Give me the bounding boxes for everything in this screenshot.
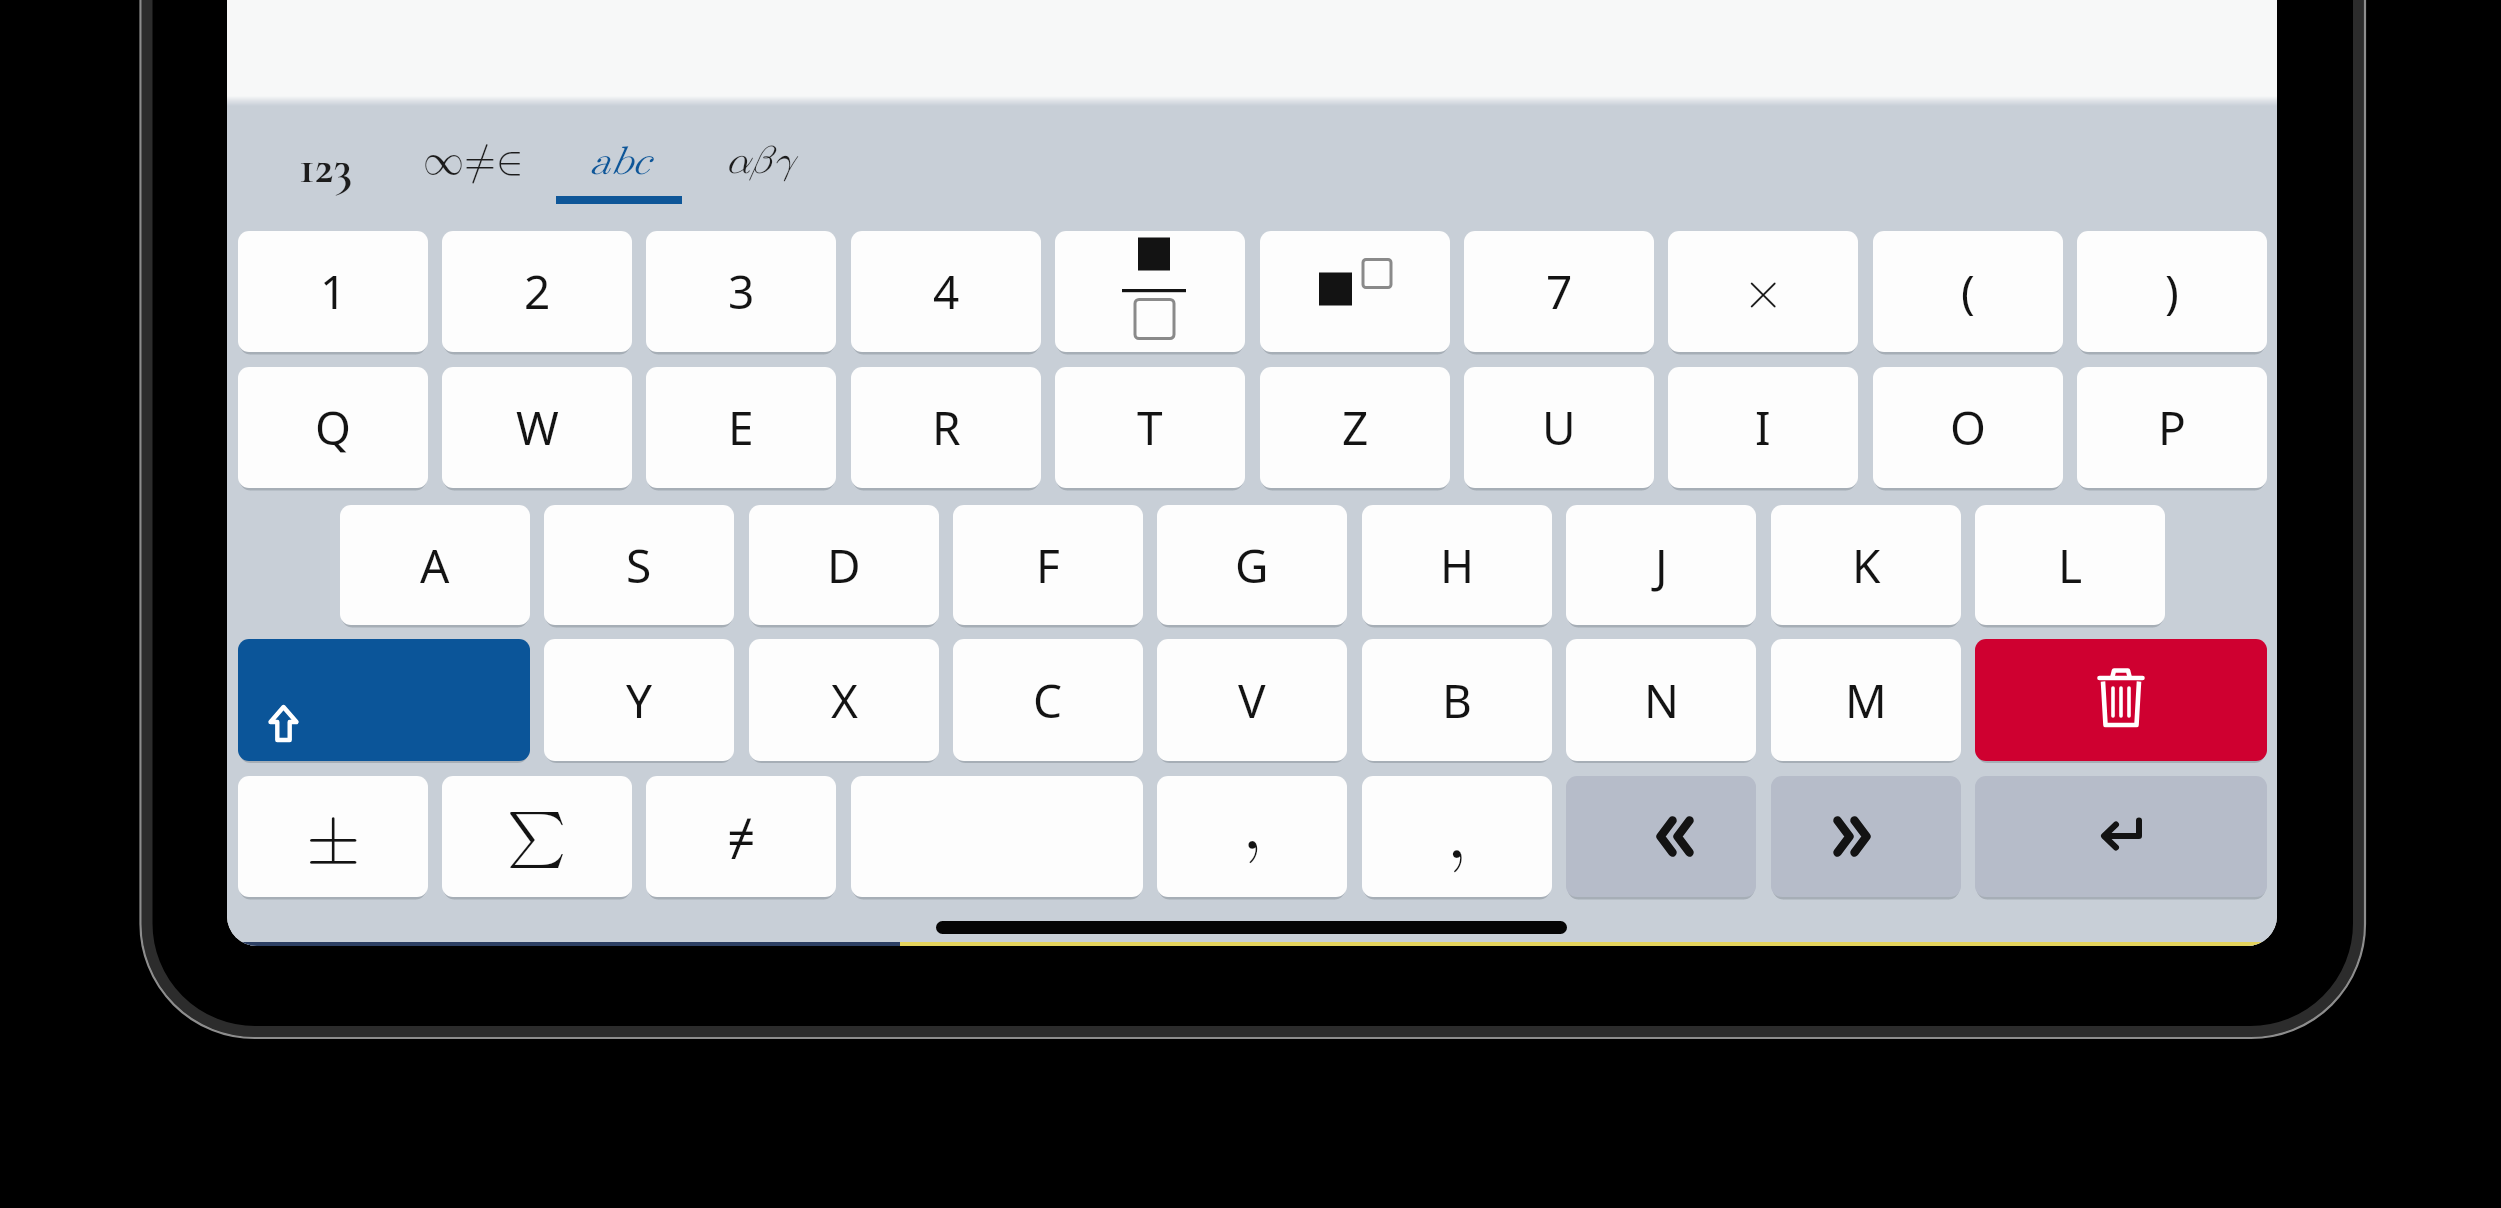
staticText: A bbox=[420, 534, 450, 597]
staticText: ‚ bbox=[1447, 798, 1468, 872]
staticText: R bbox=[932, 396, 961, 459]
staticText: O bbox=[1950, 396, 1986, 459]
button[interactable]: Fraction bbox=[1055, 231, 1245, 352]
button[interactable]: Y bbox=[544, 639, 734, 761]
staticText: 3 bbox=[728, 260, 755, 323]
staticText: M bbox=[1845, 669, 1887, 732]
button[interactable]: abc bbox=[549, 112, 689, 218]
staticText: T bbox=[1137, 396, 1163, 459]
staticText: 2 bbox=[524, 260, 551, 323]
staticText: H bbox=[1440, 534, 1475, 597]
button[interactable]: D bbox=[749, 505, 939, 625]
staticText: S bbox=[626, 534, 652, 597]
button[interactable]: αβγ bbox=[689, 112, 829, 218]
button[interactable]: Exponent bbox=[1260, 231, 1450, 352]
button[interactable]: Enter bbox=[1975, 776, 2267, 897]
button[interactable]: C bbox=[953, 639, 1143, 761]
staticText: D bbox=[827, 534, 861, 597]
button[interactable]: ∑ bbox=[442, 776, 632, 897]
staticText: Y bbox=[626, 669, 653, 732]
button[interactable]: G bbox=[1157, 505, 1347, 625]
button[interactable]: N bbox=[1566, 639, 1756, 761]
staticText: Z bbox=[1342, 396, 1369, 459]
button[interactable]: Shift bbox=[238, 639, 530, 761]
button[interactable]: V bbox=[1157, 639, 1347, 761]
button[interactable]: T bbox=[1055, 367, 1245, 488]
staticText: 4 bbox=[933, 260, 960, 323]
button[interactable]: Next bbox=[1771, 776, 1961, 897]
staticText: ) bbox=[2165, 260, 2179, 323]
staticText: 123 bbox=[299, 139, 353, 196]
button[interactable]: A bbox=[340, 505, 530, 625]
button[interactable]: 3 bbox=[646, 231, 836, 352]
button[interactable]: Previous bbox=[1566, 776, 1756, 897]
staticText: ∞≠∈ bbox=[423, 141, 524, 182]
staticText: ( bbox=[1961, 260, 1975, 323]
button[interactable]: ± bbox=[238, 776, 428, 897]
staticText: F bbox=[1036, 534, 1060, 597]
staticText: N bbox=[1644, 669, 1679, 732]
staticText: ≠ bbox=[727, 803, 756, 871]
staticText: B bbox=[1442, 669, 1472, 732]
button[interactable]: ≠ bbox=[646, 776, 836, 897]
staticText: K bbox=[1852, 534, 1881, 597]
button[interactable]: H bbox=[1362, 505, 1552, 625]
staticText: G bbox=[1235, 534, 1269, 597]
staticText: ’ bbox=[1242, 832, 1263, 897]
staticText: E bbox=[728, 396, 754, 459]
button[interactable]: 7 bbox=[1464, 231, 1654, 352]
button[interactable]: B bbox=[1362, 639, 1552, 761]
button[interactable]: L bbox=[1975, 505, 2165, 625]
button[interactable]: 1 bbox=[238, 231, 428, 352]
button[interactable]: S bbox=[544, 505, 734, 625]
staticText: J bbox=[1655, 534, 1668, 597]
button[interactable]: ’ bbox=[1157, 776, 1347, 897]
button[interactable]: Delete bbox=[1975, 639, 2267, 761]
staticText: U bbox=[1542, 396, 1576, 459]
staticText: P bbox=[2158, 396, 2186, 459]
staticText: 7 bbox=[1546, 260, 1573, 323]
staticText: abc bbox=[589, 142, 649, 182]
staticText: I bbox=[1755, 396, 1771, 459]
button[interactable]: U bbox=[1464, 367, 1654, 488]
staticText: X bbox=[831, 669, 858, 732]
button[interactable]: Z bbox=[1260, 367, 1450, 488]
staticText: V bbox=[1238, 669, 1266, 732]
button[interactable]: I bbox=[1668, 367, 1858, 488]
button[interactable]: 123 bbox=[256, 112, 396, 218]
button[interactable]: 4 bbox=[851, 231, 1041, 352]
button[interactable]: M bbox=[1771, 639, 1961, 761]
button[interactable]: ( bbox=[1873, 231, 2063, 352]
staticText: Q bbox=[315, 396, 351, 459]
button[interactable]: K bbox=[1771, 505, 1961, 625]
button[interactable]: F bbox=[953, 505, 1143, 625]
button[interactable]: ∞≠∈ bbox=[403, 112, 543, 218]
button[interactable]: X bbox=[749, 639, 939, 761]
staticText: ± bbox=[306, 802, 361, 872]
staticText: L bbox=[2058, 534, 2083, 597]
staticText: αβγ bbox=[724, 142, 794, 181]
button[interactable]: × bbox=[1668, 231, 1858, 352]
staticText: 1 bbox=[320, 260, 347, 323]
button[interactable]: W bbox=[442, 367, 632, 488]
staticText: ∑ bbox=[507, 809, 567, 865]
button[interactable]: O bbox=[1873, 367, 2063, 488]
button[interactable]: ‚ bbox=[1362, 776, 1552, 897]
staticText: C bbox=[1033, 669, 1063, 732]
button[interactable]: Q bbox=[238, 367, 428, 488]
button[interactable]: 2 bbox=[442, 231, 632, 352]
button[interactable]: P bbox=[2077, 367, 2267, 488]
button[interactable]: J bbox=[1566, 505, 1756, 625]
staticText: × bbox=[1743, 266, 1784, 318]
staticText: W bbox=[516, 396, 559, 459]
button[interactable]: R bbox=[851, 367, 1041, 488]
button[interactable]: ) bbox=[2077, 231, 2267, 352]
button[interactable]: E bbox=[646, 367, 836, 488]
